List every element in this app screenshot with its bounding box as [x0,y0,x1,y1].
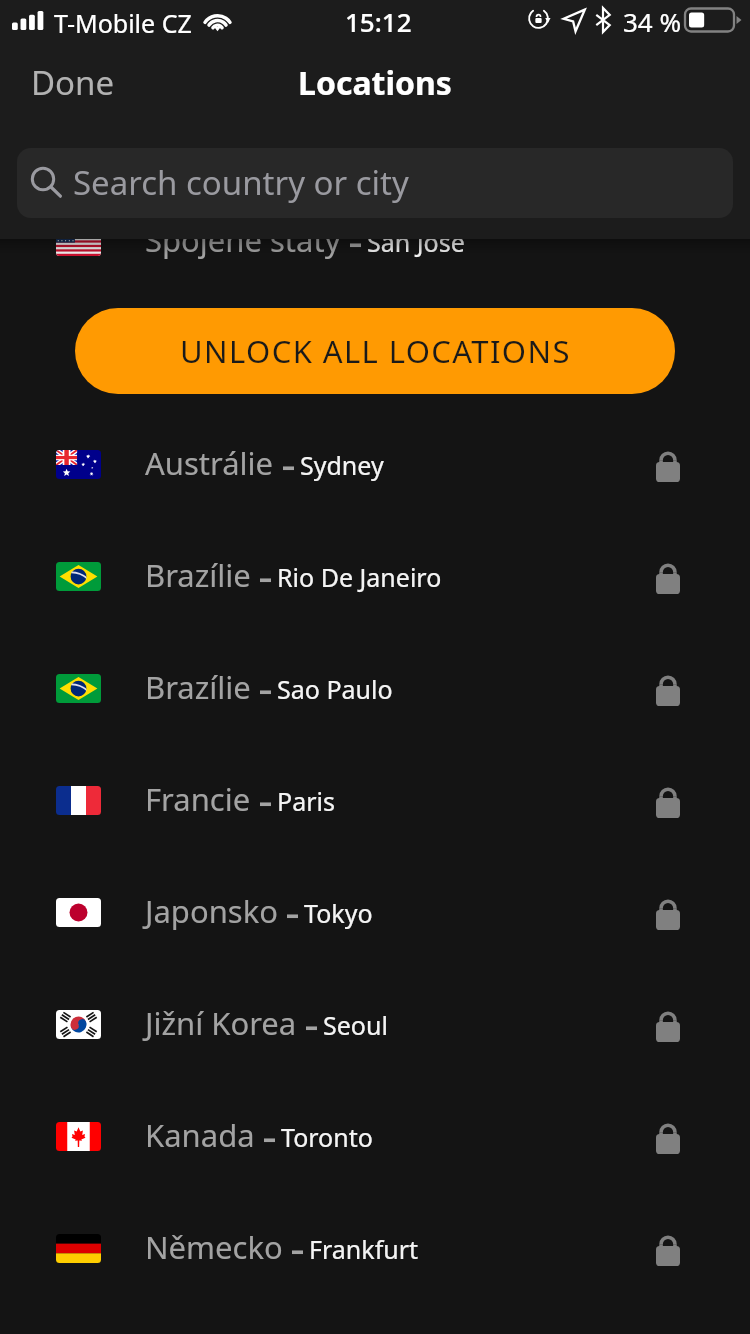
staticText [264,1114,273,1156]
button[interactable]: UNLOCK ALL LOCATIONS [75,308,675,394]
staticText: San Jose [367,225,465,259]
staticText: 15:12 [345,4,412,39]
button[interactable]: Brazílie [0,632,750,744]
staticText [287,890,296,932]
staticText [260,778,269,820]
other: Locked location [656,899,680,930]
other: Locked location [656,1011,680,1042]
staticText [260,666,269,708]
other: Locked location [656,451,680,482]
staticText: 34 % [623,4,682,39]
other: Locked location [656,787,680,818]
button[interactable]: Done [20,58,125,106]
other: Locked location [656,1235,680,1266]
staticText: Kanada [145,1114,255,1156]
button[interactable]: Austrálie [0,408,750,520]
staticText [306,1002,315,1044]
staticText: Sao Paulo [277,672,393,706]
button[interactable]: Search country or city [17,148,733,218]
button[interactable]: Jižní Korea [0,968,750,1080]
staticText: Francie [145,778,251,820]
staticText: Toronto [281,1120,373,1154]
staticText: Austrálie [145,442,274,484]
staticText: UNLOCK ALL LOCATIONS [180,330,571,372]
staticText: T-Mobile CZ [54,6,192,40]
staticText: Jižní Korea [145,1002,297,1044]
staticText [350,219,359,261]
staticText: Frankfurt [309,1232,419,1266]
other: Locked location [656,675,680,706]
staticText: Japonsko [145,890,278,932]
button[interactable]: Německo [0,1192,750,1304]
button[interactable]: Spojené státy [0,185,750,297]
staticText: Spojené státy [145,219,341,261]
staticText: Done [31,60,115,105]
button[interactable]: Francie [0,744,750,856]
staticText [260,554,269,596]
staticText: Brazílie [145,666,251,708]
other: Locked location [656,563,680,594]
staticText [283,442,292,484]
staticText [292,1226,301,1268]
other: Locked location [656,1123,680,1154]
staticText: Tokyo [304,896,373,930]
staticText: Brazílie [145,554,251,596]
staticText: Seoul [323,1008,388,1042]
button[interactable]: Kanada [0,1080,750,1192]
staticText: Německo [145,1226,283,1268]
staticText: Sydney [300,448,384,482]
staticText: Search country or city [73,160,409,205]
staticText: Locations [298,61,452,105]
button[interactable]: Japonsko [0,856,750,968]
staticText: Rio De Janeiro [277,560,442,594]
button[interactable]: Brazílie [0,520,750,632]
staticText: Paris [277,784,335,818]
